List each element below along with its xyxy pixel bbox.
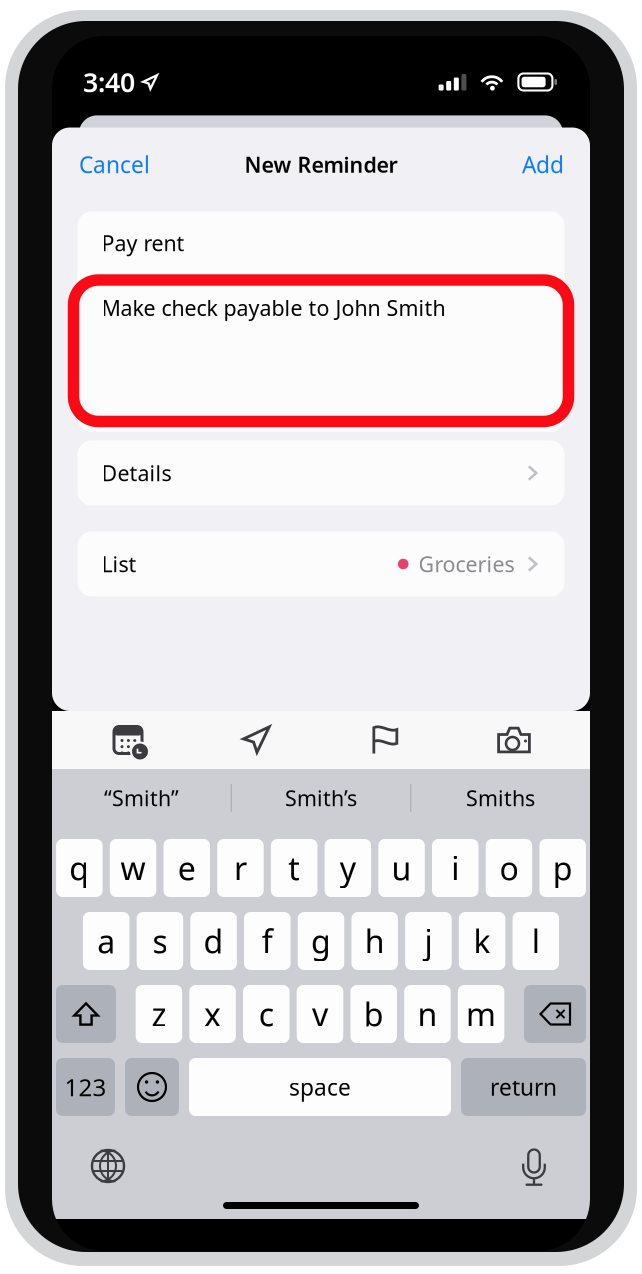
- button[interactable]: Smiths: [411, 775, 589, 821]
- button[interactable]: w: [110, 839, 156, 897]
- button[interactable]: x: [189, 985, 236, 1043]
- button[interactable]: g: [298, 912, 344, 970]
- button[interactable]: Details: [77, 440, 564, 505]
- staticText: n: [417, 993, 437, 1035]
- button[interactable]: t: [271, 839, 317, 897]
- staticText: f: [262, 920, 273, 962]
- button[interactable]: i: [432, 839, 478, 897]
- staticText: return: [490, 1072, 557, 1102]
- staticText: r: [234, 847, 247, 889]
- staticText: w: [121, 847, 146, 889]
- button[interactable]: o: [486, 839, 532, 897]
- staticText: d: [204, 920, 224, 962]
- button[interactable]: q: [56, 839, 103, 897]
- staticText: l: [532, 920, 540, 962]
- staticText: o: [499, 847, 518, 889]
- button[interactable]: r: [217, 839, 264, 897]
- staticText: 123: [64, 1071, 106, 1103]
- button[interactable]: u: [378, 839, 425, 897]
- button[interactable]: z: [136, 985, 182, 1043]
- button[interactable]: Emoji: [125, 1058, 179, 1116]
- button[interactable]: v: [297, 985, 343, 1043]
- button[interactable]: Cancel: [70, 138, 159, 190]
- button[interactable]: Switch keyboard: [80, 1140, 136, 1192]
- staticText: a: [97, 920, 115, 962]
- staticText: x: [204, 993, 221, 1035]
- button[interactable]: d: [190, 912, 237, 970]
- staticText: space: [289, 1072, 351, 1102]
- button[interactable]: j: [405, 912, 452, 970]
- staticText: List: [101, 550, 136, 578]
- staticText: Make check payable to John Smith: [101, 293, 445, 322]
- button[interactable]: Dictate: [506, 1140, 562, 1192]
- button[interactable]: a: [83, 912, 129, 970]
- button[interactable]: y: [325, 839, 371, 897]
- button[interactable]: b: [350, 985, 397, 1043]
- staticText: g: [311, 920, 331, 962]
- button[interactable]: Camera: [476, 711, 552, 769]
- button[interactable]: h: [351, 912, 398, 970]
- staticText: h: [365, 920, 385, 962]
- button[interactable]: e: [163, 839, 210, 897]
- staticText: c: [259, 993, 274, 1035]
- staticText: Add: [522, 149, 564, 179]
- button[interactable]: 123: [56, 1058, 115, 1116]
- staticText: b: [364, 993, 384, 1035]
- staticText: v: [312, 993, 328, 1035]
- button[interactable]: Location: [219, 711, 295, 769]
- staticText: 3:40: [83, 64, 135, 100]
- button[interactable]: l: [512, 912, 559, 970]
- button[interactable]: “Smith”: [53, 775, 231, 821]
- staticText: z: [151, 993, 166, 1035]
- staticText: e: [178, 847, 196, 889]
- button[interactable]: Flag: [347, 711, 423, 769]
- button[interactable]: p: [539, 839, 586, 897]
- staticText: Smith’s: [285, 784, 357, 812]
- staticText: Pay rent: [101, 229, 184, 257]
- staticText: Details: [101, 459, 171, 487]
- staticText: j: [424, 920, 432, 962]
- button[interactable]: Smith’s: [232, 775, 410, 821]
- button[interactable]: f: [244, 912, 291, 970]
- button[interactable]: Date and time: [90, 711, 166, 769]
- button[interactable]: m: [458, 985, 504, 1043]
- button[interactable]: Add: [513, 138, 573, 190]
- staticText: m: [466, 993, 496, 1035]
- staticText: t: [288, 847, 300, 889]
- staticText: Groceries: [418, 550, 514, 578]
- button[interactable]: List: [77, 531, 564, 596]
- staticText: i: [451, 847, 459, 889]
- button[interactable]: Delete: [524, 985, 586, 1043]
- staticText: q: [69, 847, 89, 889]
- staticText: Cancel: [79, 149, 150, 179]
- staticText: New Reminder: [244, 150, 397, 179]
- button[interactable]: k: [459, 912, 505, 970]
- staticText: Smiths: [466, 784, 535, 812]
- button[interactable]: Shift: [56, 985, 116, 1043]
- button[interactable]: c: [243, 985, 290, 1043]
- staticText: “Smith”: [104, 784, 179, 812]
- staticText: k: [474, 920, 491, 962]
- button[interactable]: n: [404, 985, 451, 1043]
- button[interactable]: s: [137, 912, 183, 970]
- staticText: s: [152, 920, 167, 962]
- button[interactable]: space: [189, 1058, 451, 1116]
- staticText: u: [392, 847, 412, 889]
- staticText: p: [553, 847, 573, 889]
- staticText: y: [340, 847, 356, 889]
- button[interactable]: return: [461, 1058, 586, 1116]
